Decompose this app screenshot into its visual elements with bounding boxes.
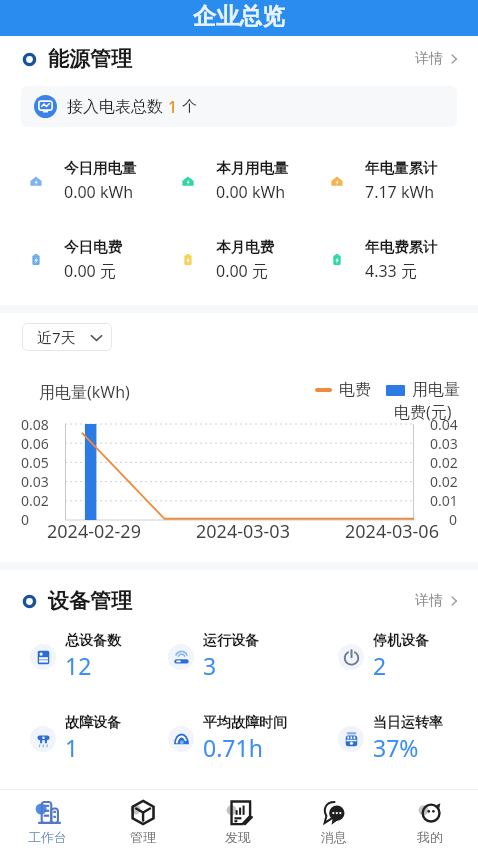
staticText: 今日电费 (64, 238, 122, 256)
staticText: 工作台 (28, 829, 67, 845)
button[interactable]: 近7天 (22, 323, 112, 351)
staticText: 电费 (339, 380, 371, 400)
staticText: 企业总览 (193, 2, 285, 31)
staticText: 2024-02-29 (47, 519, 141, 544)
staticText: 0.00 kWh (216, 181, 286, 203)
staticText: 0.00 kWh (64, 181, 134, 203)
staticText: 37% (373, 732, 419, 763)
staticText: 3 (203, 650, 217, 681)
staticText: 0.01 (430, 491, 458, 510)
button[interactable]: 详情 (411, 588, 464, 614)
staticText: 0 (449, 510, 458, 529)
staticText: 停机设备 (373, 632, 429, 650)
button[interactable]: 详情 (411, 46, 464, 72)
staticText: 发现 (225, 829, 251, 845)
staticText: 运行设备 (203, 632, 259, 650)
button[interactable]: 接入电表总数 (21, 86, 457, 127)
staticText: 2024-03-06 (345, 519, 439, 544)
staticText: 平均故障时间 (203, 714, 287, 732)
staticText: 当日运转率 (373, 714, 443, 732)
staticText: 消息 (321, 829, 347, 845)
staticText: 0.06 (21, 434, 49, 453)
staticText: 0.08 (21, 415, 49, 434)
staticText: 今日用电量 (64, 159, 137, 177)
staticText: 近7天 (37, 327, 76, 347)
staticText: 电费(元) (394, 401, 452, 423)
staticText: 0 (21, 510, 30, 529)
staticText: 我的 (417, 829, 443, 845)
staticText: 0.05 (21, 453, 49, 472)
staticText: 0.00 元 (64, 260, 116, 282)
staticText: 年电量累计 (365, 159, 438, 177)
staticText: 个 (182, 97, 197, 116)
button[interactable]: 工作台 (0, 790, 95, 850)
staticText: 1 (168, 96, 178, 118)
staticText: 接入电表总数 (67, 97, 163, 117)
staticText: 0.02 (430, 453, 458, 472)
staticText: 0.02 (430, 472, 458, 491)
staticText: 故障设备 (65, 714, 121, 732)
staticText: 7.17 kWh (365, 181, 435, 203)
staticText: 详情 (415, 592, 443, 610)
staticText: 能源管理 (48, 46, 132, 72)
button[interactable]: 管理 (95, 790, 190, 850)
staticText: 4.33 元 (365, 260, 417, 282)
staticText: 本月电费 (216, 238, 274, 256)
staticText: 管理 (130, 829, 156, 845)
button[interactable]: 发现 (190, 790, 286, 850)
staticText: 0.71h (203, 732, 263, 763)
staticText: 详情 (415, 50, 443, 68)
staticText: 设备管理 (48, 588, 132, 614)
staticText: 0.04 (430, 415, 458, 434)
staticText: 本月用电量 (216, 159, 289, 177)
staticText: 0.02 (21, 491, 49, 510)
button[interactable]: 消息 (286, 790, 382, 850)
button[interactable]: 我的 (382, 790, 478, 850)
staticText: 0.03 (430, 434, 458, 453)
staticText: 2024-03-03 (196, 519, 290, 544)
staticText: 1 (65, 732, 79, 763)
staticText: 12 (65, 650, 92, 681)
staticText: 用电量 (412, 380, 460, 400)
staticText: 总设备数 (65, 632, 121, 650)
staticText: 2 (373, 650, 387, 681)
staticText: 0.03 (21, 472, 49, 491)
staticText: 用电量(kWh) (39, 381, 130, 403)
staticText: 0.00 元 (216, 260, 268, 282)
staticText: 年电费累计 (365, 238, 438, 256)
